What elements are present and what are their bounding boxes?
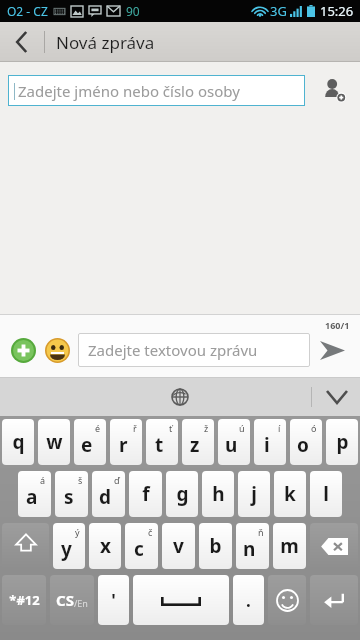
staticText: á	[40, 474, 46, 486]
staticText: b	[209, 533, 222, 559]
staticText: Zadejte jméno nebo číslo osoby	[18, 81, 240, 101]
button[interactable]: CS	[50, 575, 94, 625]
button[interactable]: o	[290, 419, 322, 465]
staticText: 90	[126, 3, 140, 19]
button[interactable]: b	[199, 523, 232, 569]
staticText: c	[134, 536, 144, 562]
button[interactable]: p	[326, 419, 358, 465]
staticText: f	[142, 481, 150, 507]
staticText: ř	[133, 422, 137, 434]
staticText: e	[81, 432, 93, 458]
staticText: n	[243, 536, 256, 562]
staticText: '	[111, 589, 116, 612]
button[interactable]: m	[273, 523, 306, 569]
staticText: 160/1	[325, 319, 350, 331]
button[interactable]: k	[274, 471, 306, 517]
staticText: l	[323, 481, 329, 507]
staticText: v	[173, 533, 184, 559]
staticText: ý	[75, 526, 80, 538]
button[interactable]: s	[55, 471, 88, 517]
staticText: x	[100, 533, 111, 559]
button[interactable]: Zadejte textovou zprávu	[78, 333, 310, 367]
staticText: č	[148, 526, 153, 538]
button[interactable]: t	[146, 419, 178, 465]
button[interactable]: r	[110, 419, 142, 465]
staticText: š	[78, 474, 83, 486]
button[interactable]: x	[89, 523, 121, 569]
staticText: k	[284, 481, 296, 507]
button[interactable]: Send	[310, 330, 354, 370]
staticText: Zadejte textovou zprávu	[88, 340, 258, 360]
staticText: O2 - CZ	[7, 3, 48, 19]
staticText: /En	[74, 597, 88, 609]
staticText: .	[246, 589, 251, 612]
button[interactable]: Shift	[2, 523, 49, 569]
button[interactable]: Zadejte jméno nebo číslo osoby	[8, 75, 305, 106]
button[interactable]: Back	[0, 22, 44, 62]
staticText: i	[264, 432, 270, 458]
staticText: ž	[204, 422, 209, 434]
button[interactable]: *#12	[2, 575, 46, 625]
button[interactable]: Delete	[310, 523, 358, 569]
button[interactable]: l	[310, 471, 342, 517]
button[interactable]: w	[38, 419, 70, 465]
button[interactable]: Add recipient	[316, 72, 352, 108]
staticText: u	[225, 432, 238, 458]
staticText: g	[176, 481, 189, 507]
staticText: í	[278, 422, 281, 434]
button[interactable]: Enter	[310, 575, 358, 625]
staticText: j	[251, 481, 257, 507]
button[interactable]: v	[162, 523, 195, 569]
staticText: 3G	[270, 2, 287, 20]
button[interactable]: a	[18, 471, 51, 517]
button[interactable]: .	[233, 575, 264, 625]
staticText: m	[280, 533, 299, 559]
staticText: é	[95, 422, 101, 434]
button[interactable]: f	[129, 471, 162, 517]
staticText: *#12	[9, 591, 40, 609]
staticText: ó	[311, 422, 317, 434]
button[interactable]: Add attachment	[6, 333, 40, 367]
staticText: p	[336, 429, 349, 455]
button[interactable]: i	[254, 419, 286, 465]
button[interactable]: u	[218, 419, 250, 465]
staticText: r	[119, 432, 128, 458]
staticText: 15:26	[320, 2, 354, 20]
button[interactable]: z	[182, 419, 214, 465]
button[interactable]: y	[53, 523, 85, 569]
button[interactable]: j	[238, 471, 270, 517]
staticText: q	[12, 429, 25, 455]
staticText: d	[99, 484, 112, 510]
button[interactable]: '	[98, 575, 129, 625]
staticText: t	[155, 432, 164, 458]
staticText: Nová zpráva	[56, 31, 155, 54]
staticText: ú	[239, 422, 245, 434]
staticText: z	[190, 432, 200, 458]
staticText: y	[61, 536, 72, 562]
button[interactable]: Change language	[160, 378, 200, 416]
staticText: w	[46, 429, 63, 455]
button[interactable]: Insert smiley	[40, 333, 74, 367]
button[interactable]: n	[236, 523, 269, 569]
staticText: h	[212, 481, 225, 507]
button[interactable]: e	[74, 419, 106, 465]
staticText: ť	[169, 422, 173, 434]
button[interactable]: Space	[133, 575, 229, 625]
staticText: s	[64, 484, 74, 510]
staticText: CS	[56, 590, 74, 610]
button[interactable]: c	[125, 523, 158, 569]
button[interactable]: g	[166, 471, 198, 517]
staticText: ď	[114, 474, 120, 486]
button[interactable]: Hide keyboard	[314, 378, 360, 416]
button[interactable]: Emoji	[268, 575, 306, 625]
button[interactable]: d	[92, 471, 125, 517]
staticText: ň	[258, 526, 264, 538]
staticText: a	[26, 484, 38, 510]
staticText: o	[297, 432, 309, 458]
button[interactable]: q	[2, 419, 34, 465]
button[interactable]: h	[202, 471, 234, 517]
